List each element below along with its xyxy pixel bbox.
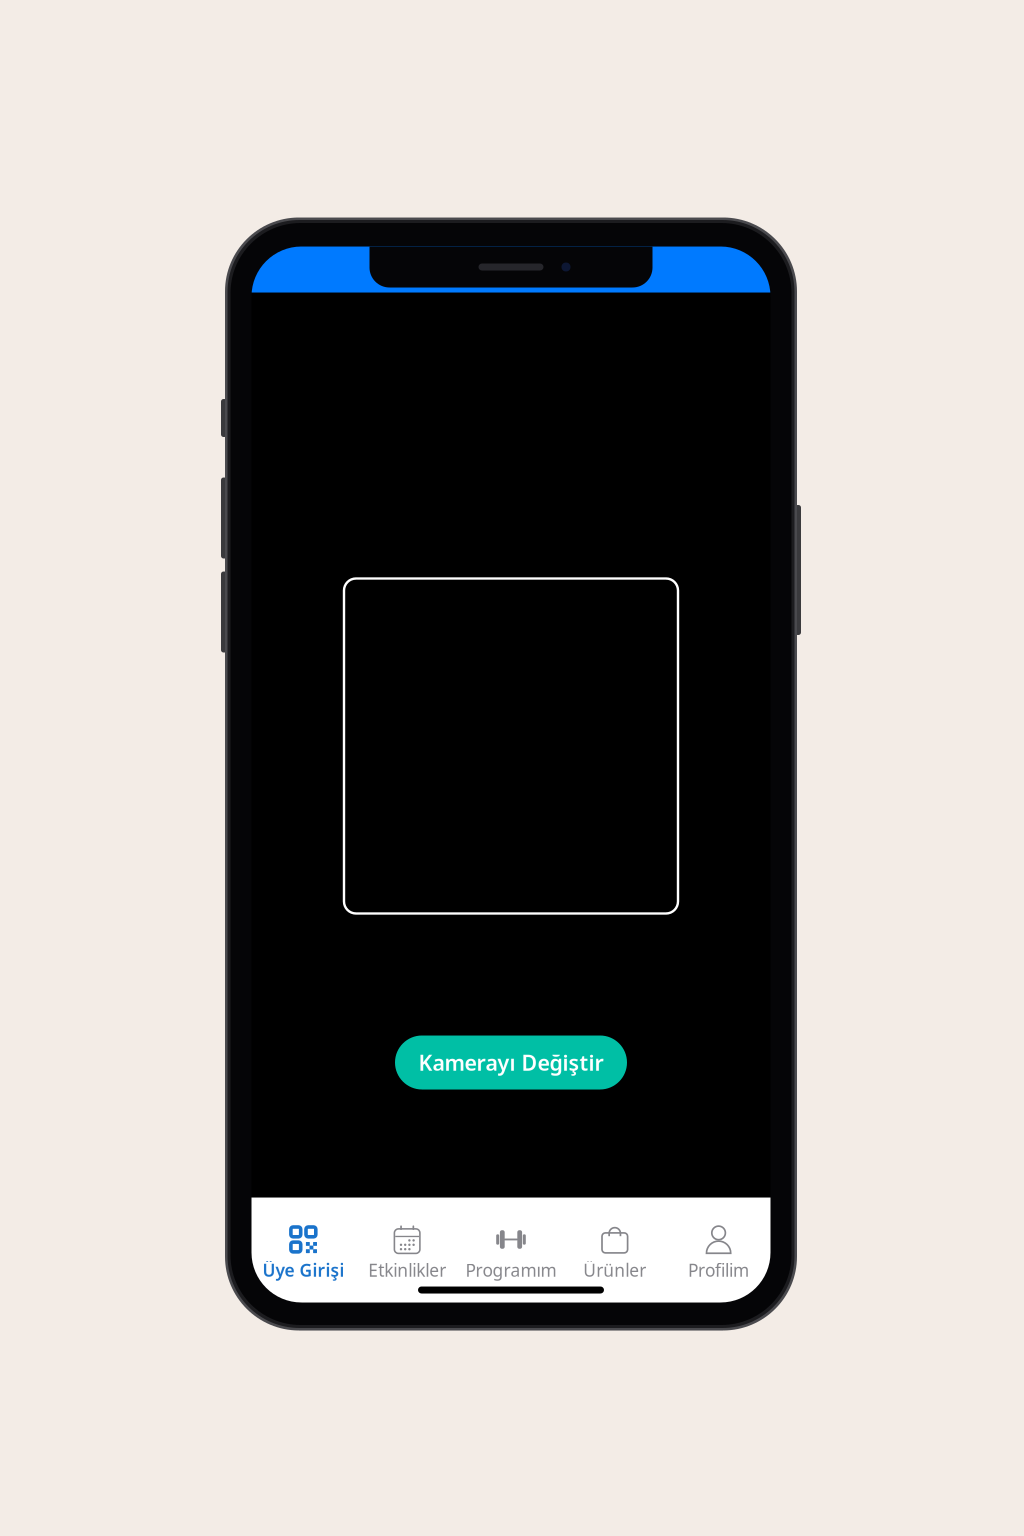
staticText: Etkinlikler [368,1258,446,1281]
button[interactable]: Programım [459,1197,563,1302]
button[interactable]: Kamerayı Değiştir [395,1035,627,1089]
staticText: Kamerayı Değiştir [418,1048,603,1077]
staticText: Ürünler [583,1258,646,1281]
staticText: Profilim [688,1258,749,1281]
button[interactable]: Üye Girişi [251,1197,355,1302]
staticText: Programım [465,1258,556,1281]
staticText: Üye Girişi [262,1258,344,1281]
button[interactable]: Profilim [667,1197,770,1302]
button[interactable]: Ürünler [563,1197,667,1302]
button[interactable]: Etkinlikler [355,1197,459,1302]
